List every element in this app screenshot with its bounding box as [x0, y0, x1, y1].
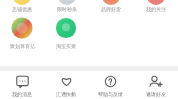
staticText: 聚划算百亿 [10, 43, 35, 49]
button[interactable]: 聚划算百亿 [0, 16, 44, 49]
staticText: 我的消息 [12, 91, 32, 97]
button[interactable]: 店铺优惠 [2, 2, 42, 12]
button[interactable]: 淘宝买菜 [44, 16, 88, 49]
staticText: 限时秒杀 [57, 6, 77, 12]
button[interactable]: 限时秒杀 [47, 2, 87, 12]
button[interactable]: 品牌好货 [91, 2, 131, 12]
staticText: 我的关注 [146, 6, 166, 12]
staticText: 店铺优惠 [12, 6, 32, 12]
button[interactable]: Messages [0, 71, 44, 99]
staticText: 帮助与反馈 [98, 91, 123, 97]
button[interactable]: Help and feedback [88, 71, 133, 99]
button[interactable]: 我的关注 [136, 2, 176, 12]
staticText: 淘宝买菜 [56, 43, 76, 49]
button[interactable]: Invite friends [133, 71, 178, 99]
button[interactable]: Favorites [44, 71, 88, 99]
staticText: 汇通快豹 [56, 91, 76, 97]
staticText: 品牌好货 [101, 6, 121, 12]
staticText: 邀请好友 [146, 91, 166, 97]
